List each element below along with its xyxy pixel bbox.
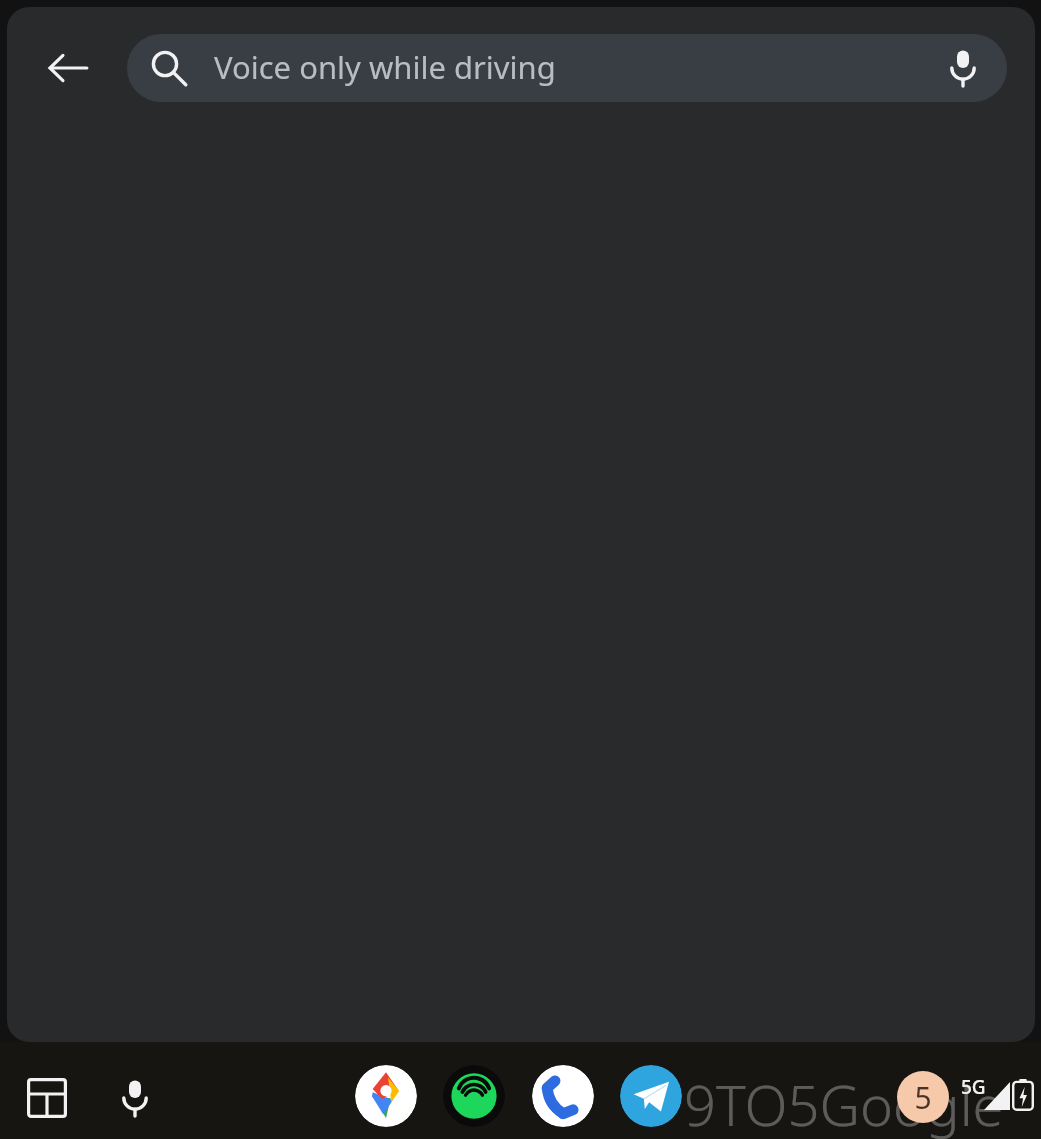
button[interactable]: Back <box>33 33 103 103</box>
staticText: 5G <box>961 1074 986 1100</box>
button[interactable]: Assistant <box>105 1068 165 1128</box>
button[interactable]: Dashboard <box>17 1068 77 1128</box>
staticText: 5 <box>914 1077 932 1118</box>
button[interactable]: Telegram <box>620 1065 682 1127</box>
button[interactable]: Phone <box>532 1065 594 1127</box>
button[interactable]: Maps <box>355 1065 417 1127</box>
staticText: 9TO5Google <box>684 1066 1004 1139</box>
button[interactable]: Voice search <box>931 36 995 100</box>
staticText: Voice only while driving <box>214 46 556 88</box>
button[interactable]: Spotify <box>443 1065 505 1127</box>
button[interactable]: Voice only while driving <box>127 34 1007 102</box>
